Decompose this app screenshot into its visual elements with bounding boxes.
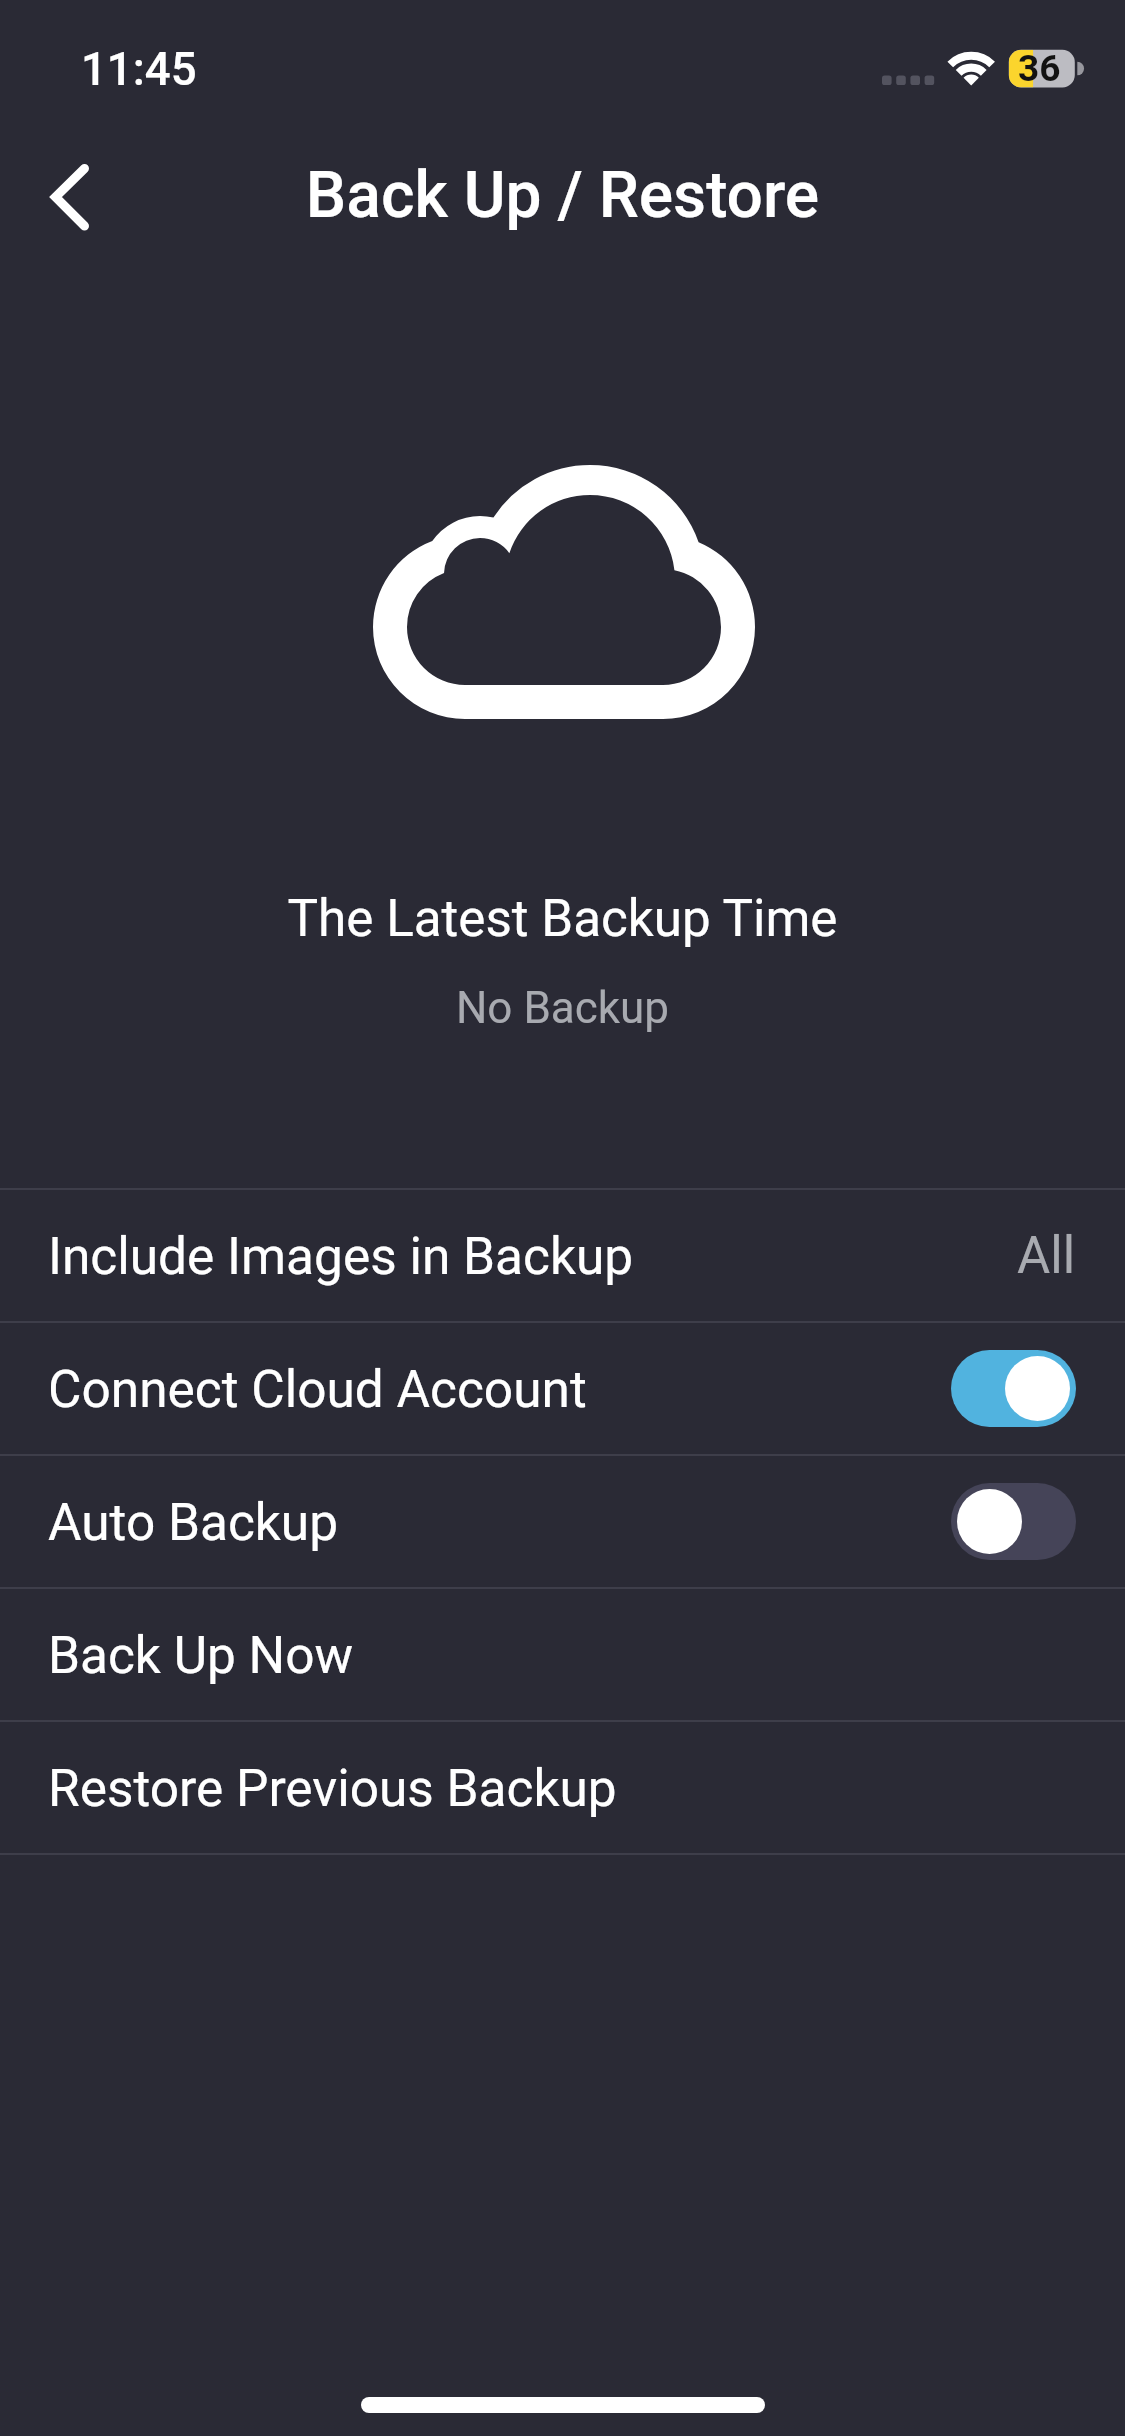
button[interactable]: Restore Previous Backup <box>0 1722 1125 1853</box>
staticText: The Latest Backup Time <box>0 888 1125 948</box>
button[interactable]: Back <box>10 137 130 257</box>
staticText: Back Up / Restore <box>0 158 1125 233</box>
button[interactable]: Back Up Now <box>0 1589 1125 1720</box>
button[interactable]: Connect Cloud Account <box>0 1323 1125 1454</box>
button[interactable]: Auto Backup <box>0 1456 1125 1587</box>
button[interactable]: Include Images in Backup <box>0 1190 1125 1321</box>
staticText: Back Up Now <box>48 1625 354 1685</box>
staticText: Restore Previous Backup <box>48 1758 617 1818</box>
staticText: 36 <box>1018 47 1061 90</box>
staticText: Auto Backup <box>48 1492 339 1552</box>
button[interactable]: Switch off <box>951 1483 1076 1560</box>
staticText: 11:45 <box>81 43 197 96</box>
staticText: Connect Cloud Account <box>48 1359 587 1419</box>
staticText: All <box>1017 1226 1076 1286</box>
button[interactable]: Switch on <box>951 1350 1076 1427</box>
staticText: Include Images in Backup <box>48 1226 634 1286</box>
staticText: No Backup <box>0 982 1125 1034</box>
